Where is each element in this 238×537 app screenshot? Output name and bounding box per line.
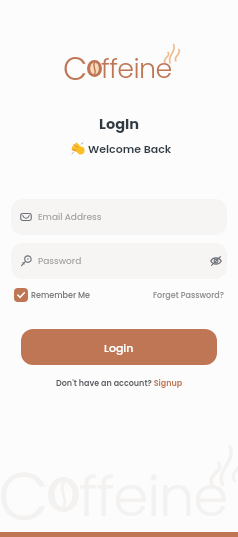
button[interactable]: Remember Me — [14, 288, 91, 302]
button[interactable]: Don't have an account? Signup — [56, 378, 183, 389]
staticText: Email Address — [38, 211, 102, 224]
other: Show password — [210, 255, 222, 267]
button[interactable]: Password — [11, 243, 227, 279]
staticText: C — [63, 47, 88, 91]
staticText: Password — [38, 255, 82, 268]
staticText: ffeine — [79, 457, 228, 536]
staticText: Remember Me — [31, 290, 91, 301]
button[interactable]: Email Address — [11, 199, 227, 235]
staticText: LogIn — [0, 114, 238, 134]
staticText: C — [0, 451, 49, 537]
button[interactable]: Forget Password? — [153, 290, 224, 301]
staticText: Login — [104, 340, 134, 355]
staticText: ffeine — [101, 50, 172, 88]
staticText: Welcome Back — [88, 141, 172, 156]
button[interactable]: Login — [21, 329, 217, 365]
